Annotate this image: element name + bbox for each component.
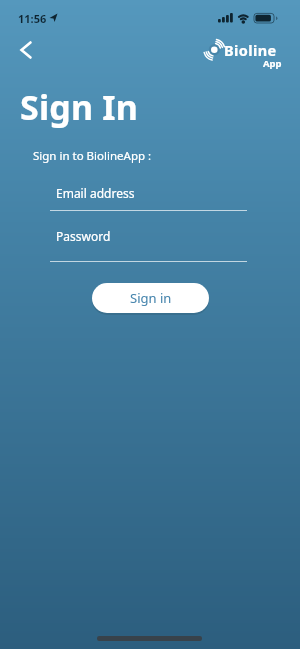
staticText: 11:56 [18,11,47,26]
staticText: App [263,57,282,70]
button[interactable]: Sign in [92,283,209,313]
staticText: Sign in to BiolineApp : [33,148,152,164]
staticText: Bioline [224,40,277,60]
button[interactable]: Email address [50,183,247,211]
staticText: Email address [56,185,135,201]
button[interactable] [12,36,40,64]
button[interactable]: Password [50,226,247,262]
staticText: Sign In [20,84,139,130]
staticText: Password [56,228,111,244]
staticText: Sign in [130,289,172,307]
